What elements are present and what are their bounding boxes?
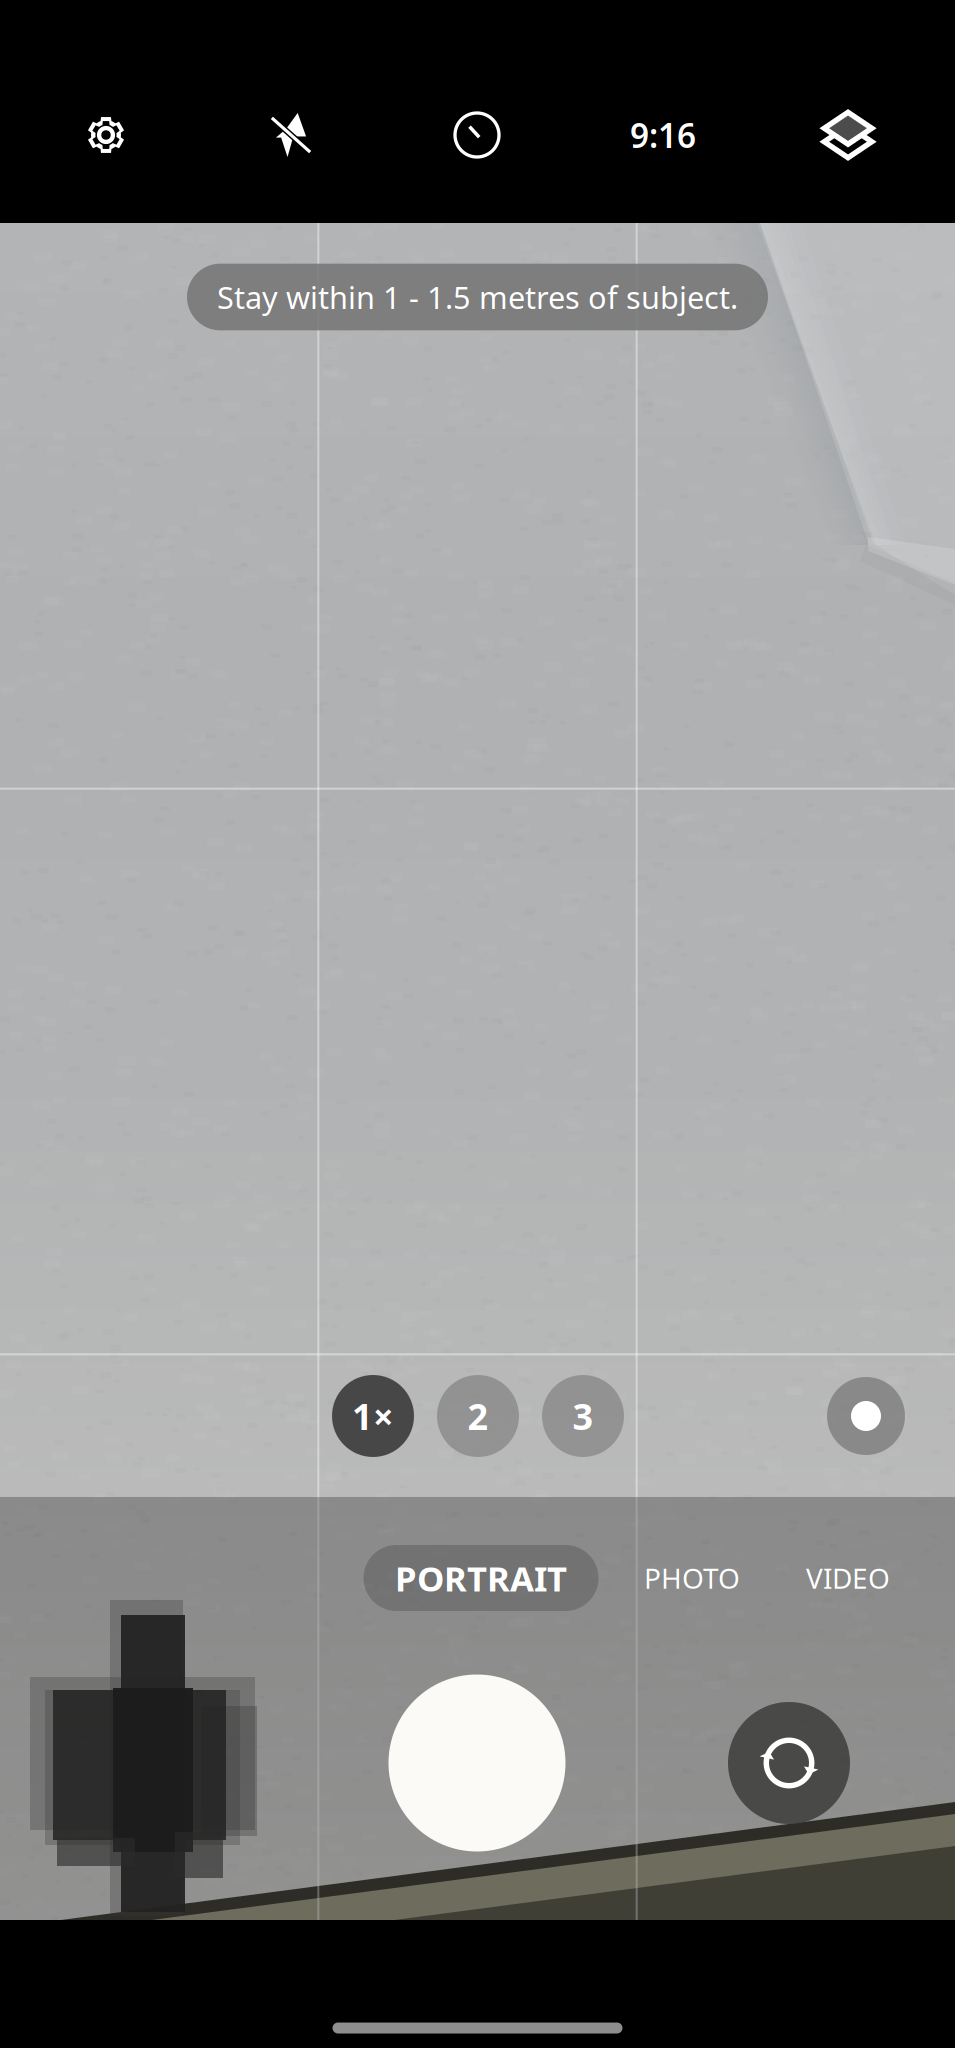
button[interactable]: Take photo — [388, 1674, 565, 1851]
button[interactable]: Camera settings — [51, 80, 161, 190]
staticText: 1× — [352, 1392, 394, 1440]
button[interactable]: Depth control — [827, 1377, 905, 1455]
button[interactable]: 9:16 — [598, 80, 728, 190]
staticText: 9:16 — [630, 113, 696, 157]
staticText: PORTRAIT — [395, 1555, 567, 1601]
staticText: Stay within 1 - 1.5 metres of subject. — [217, 277, 738, 317]
button[interactable]: PHOTO — [627, 1545, 757, 1611]
staticText: 2 — [467, 1392, 488, 1440]
button[interactable]: Photographic styles — [793, 80, 903, 190]
button[interactable]: Photo library — [5, 1600, 305, 1930]
button[interactable]: Timer — [422, 80, 532, 190]
button[interactable]: 2 — [437, 1375, 519, 1457]
staticText: VIDEO — [806, 1559, 890, 1597]
button[interactable]: VIDEO — [783, 1545, 913, 1611]
staticText: 3 — [572, 1392, 593, 1440]
staticText: PHOTO — [644, 1559, 740, 1597]
button[interactable]: PORTRAIT — [363, 1545, 598, 1611]
button[interactable]: 3 — [542, 1375, 624, 1457]
button[interactable]: 1× — [332, 1375, 414, 1457]
button[interactable]: Flash off — [236, 80, 346, 190]
button[interactable]: Switch camera — [728, 1702, 850, 1824]
